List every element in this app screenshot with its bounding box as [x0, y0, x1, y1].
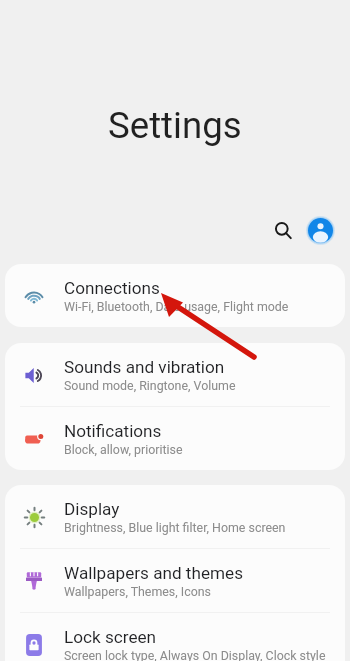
staticText: Wallpapers, Themes, Icons [64, 584, 211, 599]
staticText: Wi-Fi, Bluetooth, Data usage, Flight mod… [64, 299, 289, 314]
staticText: Lock screen [64, 627, 157, 647]
staticText: Sounds and vibration [64, 357, 225, 377]
staticText: Notifications [64, 421, 162, 441]
button[interactable]: Search [266, 213, 300, 247]
staticText: Settings [108, 104, 242, 147]
button[interactable]: Wallpapers and themes [5, 549, 345, 612]
staticText: Wallpapers and themes [64, 563, 243, 583]
button[interactable]: Sounds and vibration [5, 343, 345, 406]
button[interactable]: Lock screen [5, 613, 345, 661]
staticText: Screen lock type, Always On Display, Clo… [64, 648, 326, 661]
staticText: Block, allow, prioritise [64, 442, 183, 457]
button[interactable]: Account [300, 210, 340, 250]
button[interactable]: Connections [5, 264, 345, 327]
staticText: Sound mode, Ringtone, Volume [64, 378, 236, 393]
staticText: Brightness, Blue light filter, Home scre… [64, 520, 286, 535]
button[interactable]: Notifications [5, 407, 345, 470]
button[interactable]: Display [5, 485, 345, 548]
staticText: Display [64, 499, 120, 519]
staticText: Connections [64, 278, 160, 298]
